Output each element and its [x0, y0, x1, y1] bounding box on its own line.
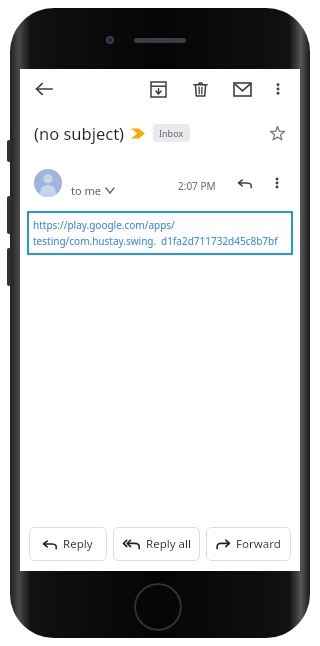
button[interactable]: Star — [262, 118, 292, 148]
button[interactable]: Home — [134, 583, 182, 631]
button[interactable]: Mark unread — [226, 73, 258, 105]
button[interactable]: Archive — [142, 73, 174, 105]
button[interactable]: More — [262, 168, 292, 198]
staticText: d1fa2d711732d45c8b7bf — [161, 234, 278, 248]
staticText: Reply all — [146, 536, 191, 552]
button[interactable]: Reply — [29, 527, 107, 561]
button[interactable]: Back — [28, 73, 60, 105]
staticText: to me — [71, 183, 101, 198]
button[interactable]: Reply — [230, 168, 260, 198]
button[interactable]: Sender avatar — [34, 169, 62, 197]
button[interactable]: Forward — [206, 527, 291, 561]
staticText: testing/com.hustay.swing. — [33, 234, 157, 248]
button[interactable]: https://play.google.com/apps/ — [27, 211, 293, 255]
button[interactable]: Inbox — [153, 124, 190, 142]
button[interactable]: Delete — [184, 73, 216, 105]
staticText: https://play.google.com/apps/ — [33, 218, 175, 232]
staticText: Inbox — [159, 127, 184, 139]
staticText: Forward — [236, 536, 281, 552]
button[interactable]: More options — [262, 73, 294, 105]
button[interactable]: Reply all — [113, 527, 200, 561]
staticText: (no subject) — [34, 122, 125, 144]
staticText: Reply — [63, 536, 93, 552]
staticText: 2:07 PM — [178, 179, 216, 193]
